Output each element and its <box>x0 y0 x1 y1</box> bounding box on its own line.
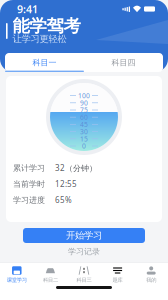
staticText: 90 <box>80 98 88 107</box>
button[interactable]: 我的 <box>134 263 168 286</box>
button[interactable]: 学习记录 <box>68 246 100 257</box>
button[interactable]: 开始学习 <box>23 228 145 243</box>
staticText: 45 <box>80 120 88 129</box>
staticText: 100 <box>78 91 90 100</box>
staticText: 课堂学习 <box>7 277 27 283</box>
staticText: 32（分钟） <box>55 163 97 173</box>
staticText: 15 <box>80 134 88 143</box>
staticText: 科目一 <box>32 58 56 67</box>
staticText: 学习记录 <box>68 247 100 256</box>
button[interactable]: 科目三 <box>67 263 101 286</box>
button[interactable]: 课堂学习 <box>0 263 34 286</box>
staticText: 9:41 <box>17 2 38 16</box>
staticText: 12:55 <box>55 179 77 189</box>
staticText: 75 <box>80 106 88 114</box>
staticText: 科目四 <box>111 58 135 67</box>
staticText: 让学习更轻松 <box>13 33 67 45</box>
staticText: 科目三 <box>76 277 91 283</box>
staticText: 30 <box>80 127 88 136</box>
staticText: 能学驾考 <box>13 15 81 37</box>
button[interactable]: 科目一 <box>5 53 84 72</box>
staticText: 科目二 <box>43 277 58 283</box>
button[interactable]: 题库 <box>101 263 134 286</box>
staticText: 65% <box>55 195 72 205</box>
staticText: 开始学习 <box>66 230 102 241</box>
button[interactable]: 科目二 <box>34 263 67 286</box>
button[interactable]: 科目四 <box>84 53 163 72</box>
staticText: 当前学时 <box>13 179 45 189</box>
staticText: 学习进度 <box>13 195 45 205</box>
staticText: 0 <box>82 142 86 150</box>
staticText: 累计学习 <box>13 163 45 173</box>
staticText: 题库 <box>113 277 123 283</box>
staticText: 60 <box>80 113 88 122</box>
staticText: 我的 <box>146 277 156 283</box>
